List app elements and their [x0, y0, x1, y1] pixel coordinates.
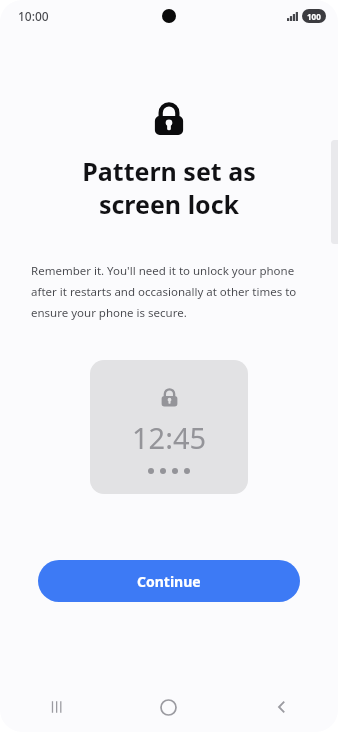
- button[interactable]: Back: [225, 682, 338, 732]
- staticText: 10:00: [18, 8, 49, 24]
- staticText: Continue: [137, 572, 201, 591]
- staticText: 100: [307, 11, 321, 22]
- staticText: 12:45: [132, 418, 207, 457]
- button[interactable]: Home: [112, 682, 225, 732]
- staticText: Pattern set as screen lock: [20, 154, 318, 221]
- button[interactable]: Continue: [38, 560, 300, 602]
- button[interactable]: Recent apps: [0, 682, 112, 732]
- staticText: Remember it. You'll need it to unlock yo…: [31, 263, 314, 320]
